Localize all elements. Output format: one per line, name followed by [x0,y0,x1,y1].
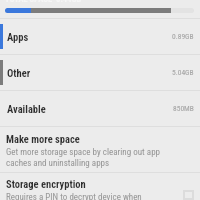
staticText: 5.04GB [172,68,194,77]
staticText: TOTAL SPACE 6.44GB [5,0,82,3]
button[interactable]: Apps [0,19,200,54]
other: Storage encryption toggle [183,190,194,200]
staticText: Requires a PIN to decrypt device when yo… [6,192,142,200]
staticText: Available [7,103,46,115]
button[interactable]: Make more space [0,127,200,172]
staticText: 0.89GB [172,32,194,41]
staticText: Apps [7,31,29,43]
staticText: Other [7,67,31,79]
staticText: Storage encryption [6,178,86,190]
staticText: Make more space [6,133,80,145]
button[interactable]: Other [0,55,200,90]
button[interactable]: Storage encryption [0,173,200,200]
staticText: Get more storage space by clearing out a… [6,147,161,169]
button[interactable]: Available [0,91,200,126]
staticText: 850MB [173,104,194,113]
